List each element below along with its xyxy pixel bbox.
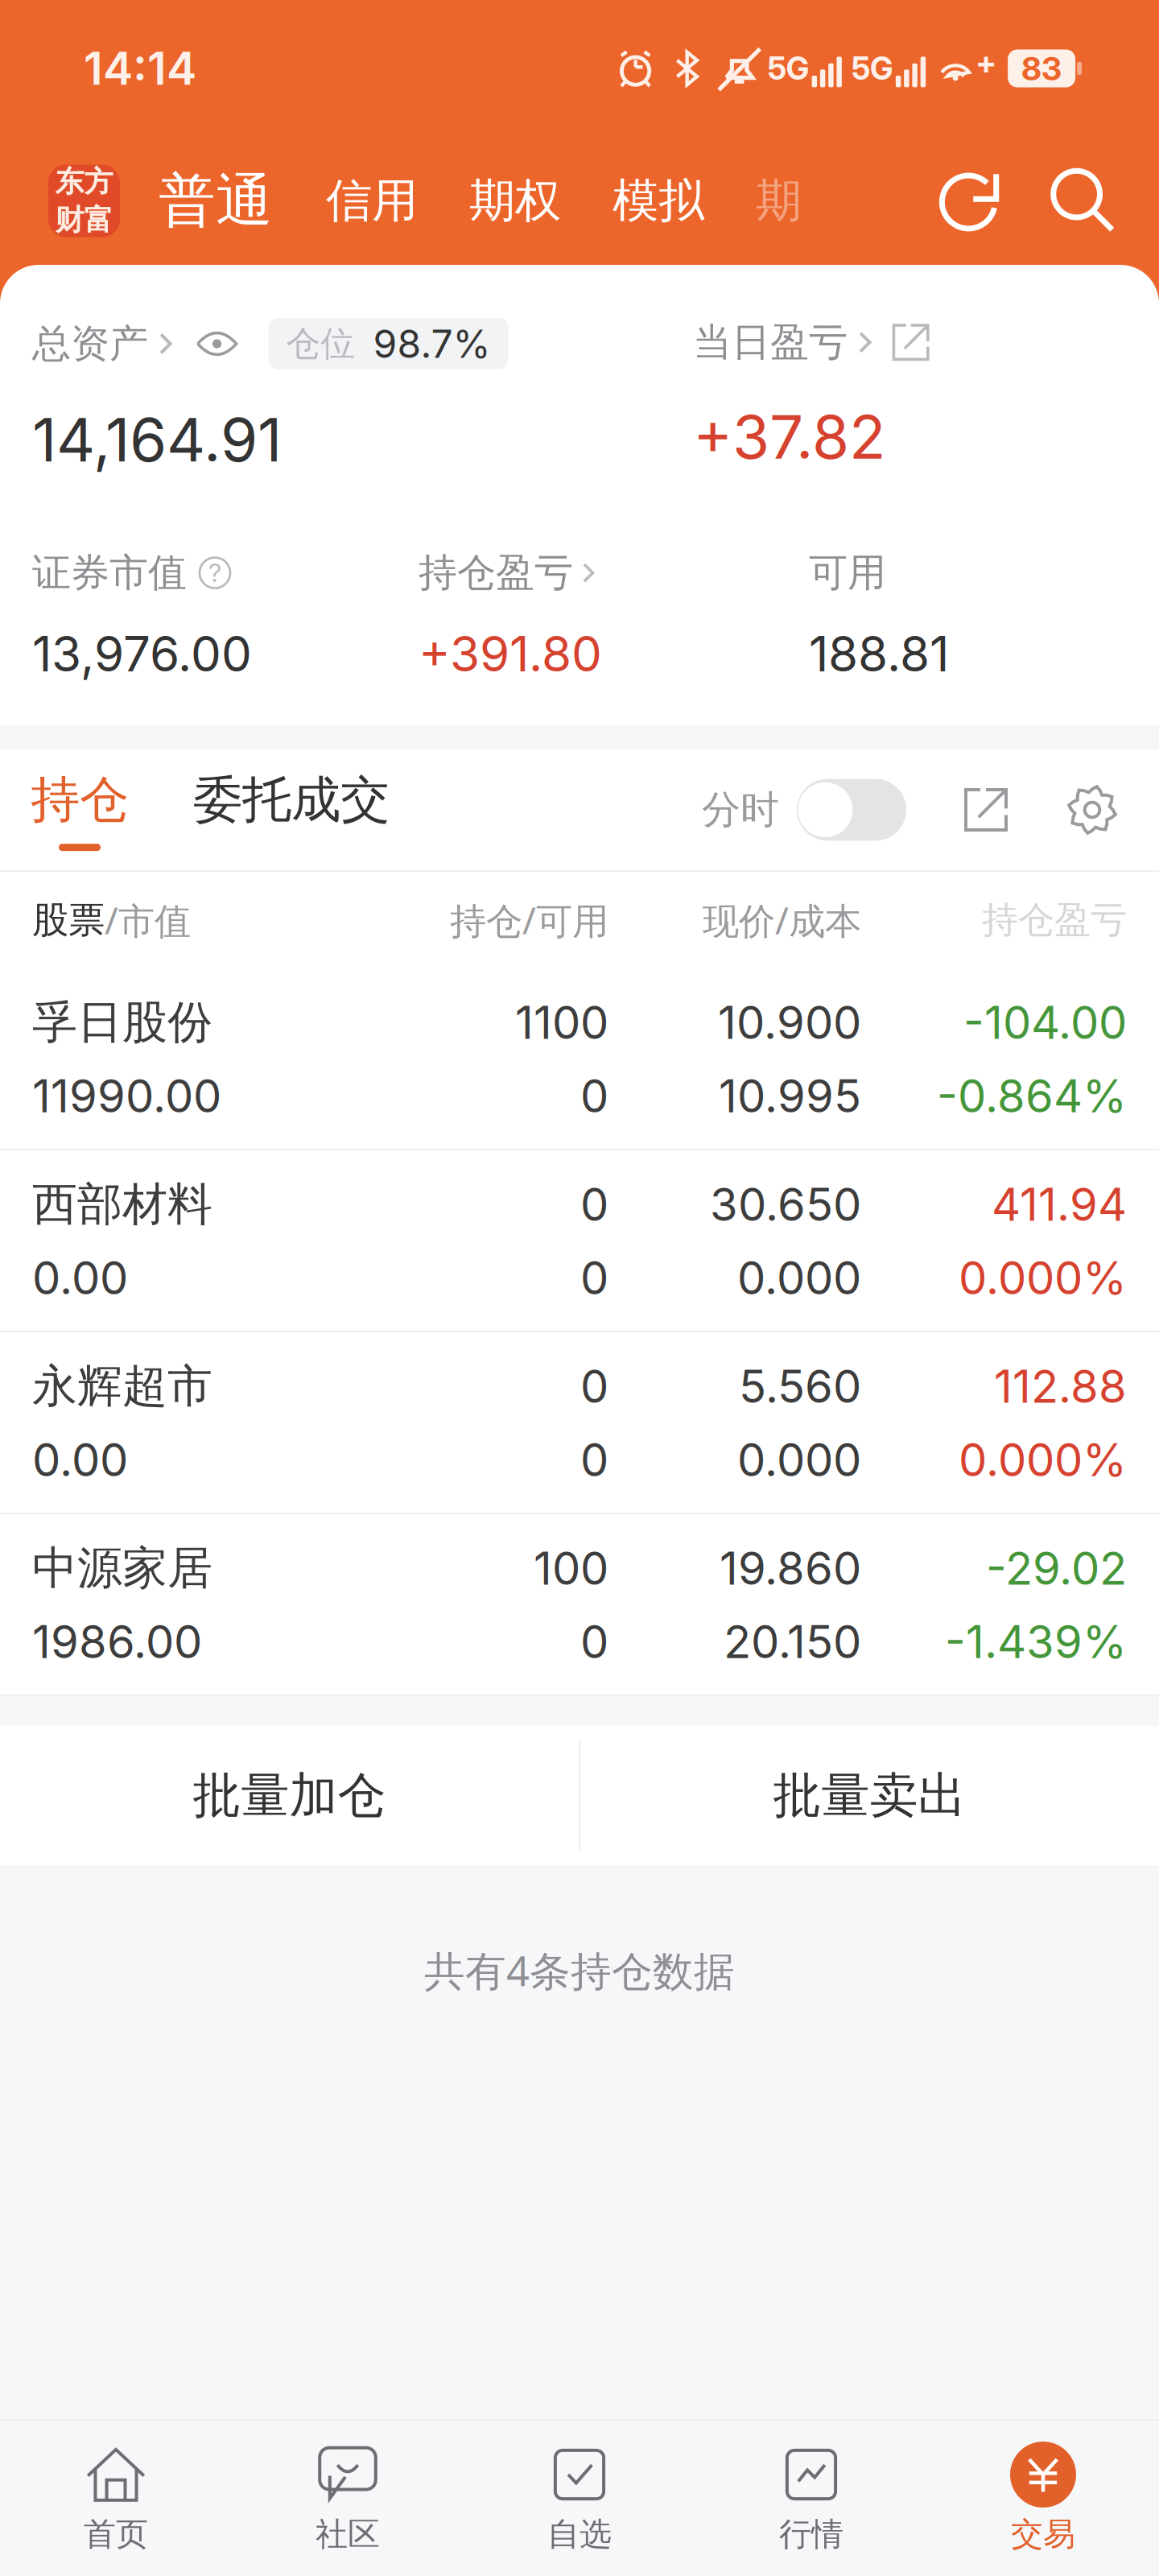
button[interactable]: East Money <box>48 165 120 237</box>
staticText: 批量卖出 <box>773 1765 966 1826</box>
staticText: 现价/成本 <box>703 895 861 945</box>
staticText: +391.80 <box>419 625 602 683</box>
staticText: 14,164.91 <box>32 403 282 476</box>
staticText: 0.000 <box>737 1250 861 1305</box>
staticText: 期权 <box>469 172 561 230</box>
staticText: 1100 <box>515 995 608 1050</box>
button[interactable]: 总资产 <box>32 318 508 369</box>
button[interactable]: 中源家居 <box>0 1514 1159 1695</box>
button[interactable]: Share <box>964 788 1008 832</box>
staticText: ? <box>208 558 221 588</box>
button[interactable]: 持仓 <box>31 769 129 851</box>
staticText: 19.860 <box>720 1541 861 1596</box>
staticText: 5G <box>851 50 893 87</box>
button[interactable]: 社区 <box>232 2421 464 2576</box>
staticText: 期 <box>756 172 802 230</box>
staticText: 孚日股份 <box>32 994 212 1051</box>
staticText: 83 <box>1021 49 1062 88</box>
staticText: 持仓盈亏 <box>982 897 1127 943</box>
staticText: 委托成交 <box>193 769 390 831</box>
staticText: 188.81 <box>809 625 949 683</box>
button[interactable]: 分时 <box>702 779 906 841</box>
staticText: 行情 <box>779 2514 843 2555</box>
staticText: -0.864% <box>937 1069 1127 1123</box>
staticText: 持仓/可用 <box>450 895 608 945</box>
staticText: 30.650 <box>710 1177 861 1232</box>
button[interactable]: Settings <box>1067 785 1117 835</box>
button[interactable]: 永辉超市 <box>0 1332 1159 1513</box>
staticText: 14:14 <box>84 41 196 96</box>
button[interactable]: Refresh <box>942 171 1001 231</box>
staticText: 100 <box>534 1541 608 1596</box>
staticText: 共有4条持仓数据 <box>424 1942 735 1998</box>
staticText: 证券市值 <box>32 548 187 597</box>
staticText: 0.00 <box>32 1432 128 1487</box>
button[interactable]: 持仓盈亏 <box>419 548 594 597</box>
staticText: 0 <box>580 1069 608 1123</box>
staticText: 0 <box>580 1614 608 1669</box>
staticText: 模拟 <box>612 172 704 230</box>
button[interactable]: 当日盈亏 <box>693 318 929 367</box>
staticText: 持仓盈亏 <box>419 548 573 597</box>
button[interactable]: 首页 <box>0 2421 232 2576</box>
staticText: 5G <box>768 50 809 87</box>
button[interactable]: 自选 <box>464 2421 695 2576</box>
button[interactable]: 普通 <box>159 165 273 237</box>
staticText: 交易 <box>1011 2514 1075 2555</box>
staticText: 0.00 <box>32 1250 128 1305</box>
staticText: 0.000 <box>737 1432 861 1487</box>
staticText: 社区 <box>316 2514 380 2555</box>
staticText: 0 <box>580 1432 608 1487</box>
staticText: 分时 <box>702 786 779 834</box>
staticText: 股票 <box>32 897 105 943</box>
staticText: 西部材料 <box>32 1176 212 1233</box>
button[interactable]: 行情 <box>695 2421 927 2576</box>
staticText: 5.560 <box>739 1359 861 1414</box>
staticText: 可用 <box>809 548 886 597</box>
staticText: -104.00 <box>963 995 1127 1050</box>
staticText: 批量加仓 <box>193 1765 386 1826</box>
button[interactable]: 模拟 <box>612 172 704 230</box>
staticText: -29.02 <box>986 1541 1127 1596</box>
staticText: 总资产 <box>32 319 148 368</box>
staticText: 10.995 <box>719 1069 861 1123</box>
staticText: 0.000% <box>959 1432 1127 1487</box>
staticText: 11990.00 <box>32 1069 221 1123</box>
staticText: 永辉超市 <box>32 1358 212 1415</box>
button[interactable]: 交易 <box>927 2421 1159 2576</box>
button[interactable]: 孚日股份 <box>0 968 1159 1149</box>
staticText: 13,976.00 <box>32 625 252 683</box>
staticText: 20.150 <box>724 1614 861 1669</box>
staticText: 中源家居 <box>32 1540 212 1597</box>
button[interactable]: 西部材料 <box>0 1150 1159 1331</box>
staticText: +37.82 <box>693 400 886 473</box>
staticText: 0.000% <box>959 1250 1127 1305</box>
button[interactable]: 期权 <box>469 172 561 230</box>
staticText: 普通 <box>159 165 273 237</box>
staticText: 仓位 <box>286 322 355 365</box>
staticText: 0 <box>580 1177 608 1232</box>
button[interactable]: 批量加仓 <box>0 1726 579 1865</box>
button[interactable]: Search <box>1053 170 1114 231</box>
staticText: -1.439% <box>945 1614 1127 1669</box>
button[interactable]: 信用 <box>326 172 418 230</box>
staticText: 当日盈亏 <box>693 318 848 367</box>
staticText: 10.900 <box>718 995 861 1050</box>
staticText: 信用 <box>326 172 418 230</box>
staticText: 98.7% <box>373 320 491 367</box>
staticText: 1986.00 <box>32 1614 202 1669</box>
button[interactable]: 批量卖出 <box>580 1726 1159 1865</box>
staticText: 0 <box>580 1250 608 1305</box>
staticText: 首页 <box>84 2514 148 2555</box>
staticText: 持仓 <box>31 769 129 831</box>
staticText: 411.94 <box>992 1177 1127 1232</box>
staticText: 自选 <box>547 2514 612 2555</box>
staticText: 112.88 <box>994 1359 1127 1414</box>
staticText: /市值 <box>105 895 191 945</box>
button[interactable]: 委托成交 <box>193 769 390 851</box>
staticText: 0 <box>580 1359 608 1414</box>
staticText: 东方 <box>55 163 113 200</box>
staticText: + <box>976 43 996 81</box>
staticText: 财富 <box>55 202 113 238</box>
